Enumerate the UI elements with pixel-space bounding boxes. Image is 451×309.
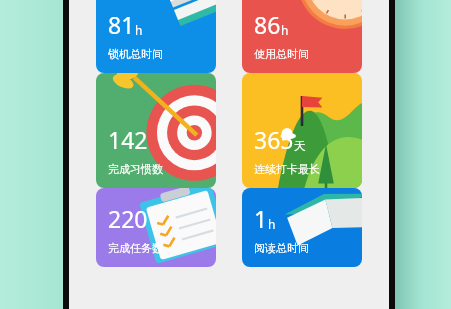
staticText: 完成习惯数 <box>108 162 163 176</box>
staticText: 220 <box>108 203 148 234</box>
staticText: 使用总时间 <box>254 47 309 61</box>
button[interactable]: 86 <box>242 0 362 73</box>
staticText: 142 <box>108 124 148 155</box>
staticText: h <box>268 216 276 232</box>
staticText: 天 <box>294 138 306 153</box>
button[interactable]: 142 <box>96 73 216 188</box>
button[interactable]: 220 <box>96 188 216 267</box>
button[interactable]: 365 <box>242 73 362 188</box>
staticText: 365 <box>254 124 294 155</box>
staticText: 81 <box>108 9 135 40</box>
staticText: h <box>135 22 143 38</box>
staticText: 锁机总时间 <box>108 47 163 61</box>
staticText: 连续打卡最长 <box>254 162 320 176</box>
button[interactable]: 81 <box>96 0 216 73</box>
staticText: 阅读总时间 <box>254 241 309 255</box>
staticText: h <box>281 22 289 38</box>
button[interactable]: 1 <box>242 188 362 267</box>
staticText: 1 <box>254 203 268 234</box>
staticText: 完成任务数 <box>108 241 163 255</box>
staticText: 86 <box>254 9 281 40</box>
